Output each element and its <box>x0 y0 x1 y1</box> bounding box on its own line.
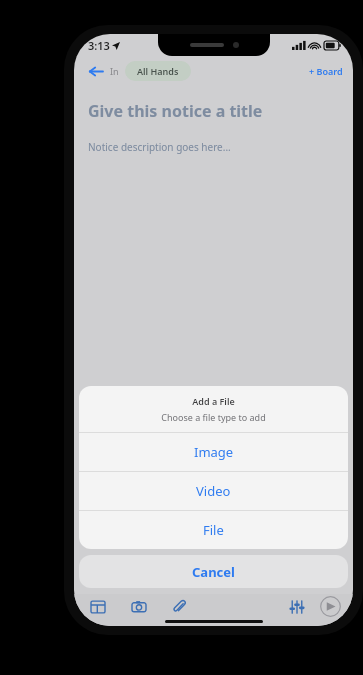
staticText: Choose a file type to add <box>161 411 266 423</box>
staticText: 3:13 <box>88 38 110 53</box>
staticText: Video <box>196 482 231 500</box>
button[interactable]: Video <box>79 472 348 510</box>
button[interactable]: + Board <box>299 60 353 82</box>
staticText: In <box>110 65 119 77</box>
button[interactable]: Settings <box>287 597 306 616</box>
staticText: + Board <box>309 65 343 77</box>
staticText: Notice description goes here... <box>88 140 231 154</box>
staticText: Add a File <box>192 395 235 407</box>
staticText: Image <box>194 443 234 461</box>
button[interactable]: All Hands <box>125 61 191 81</box>
button[interactable]: Cancel <box>79 555 348 588</box>
button[interactable]: File <box>79 511 348 549</box>
button[interactable]: Image <box>79 433 348 471</box>
staticText: Give this notice a title <box>88 100 263 122</box>
button[interactable]: Send <box>320 596 341 617</box>
staticText: Cancel <box>192 563 235 581</box>
button[interactable]: Layout <box>88 597 107 616</box>
staticText: File <box>203 521 224 539</box>
button[interactable]: Camera <box>129 597 148 616</box>
button[interactable]: Back <box>84 60 106 82</box>
staticText: All Hands <box>137 65 179 77</box>
button[interactable]: Attach file <box>170 597 189 616</box>
